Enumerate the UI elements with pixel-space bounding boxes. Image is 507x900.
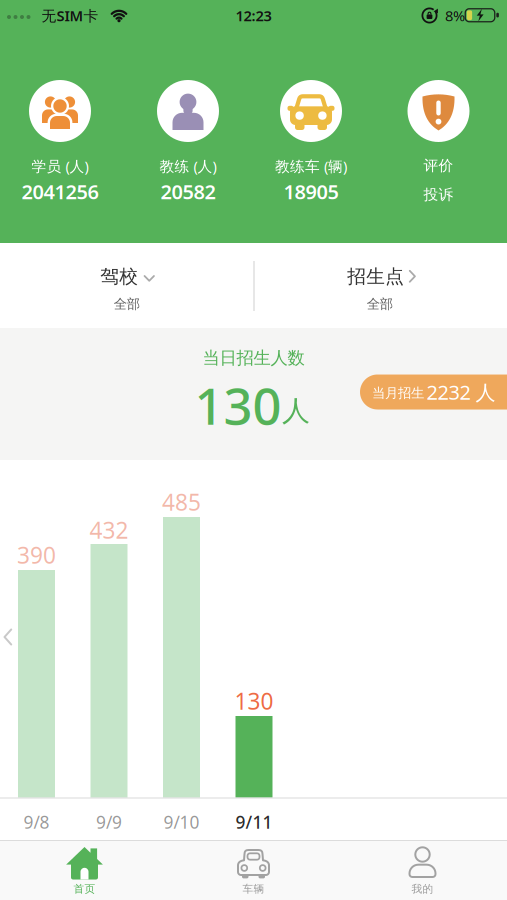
staticText: 投诉: [423, 185, 453, 203]
button[interactable]: 车辆: [169, 840, 338, 900]
staticText: 人: [282, 394, 310, 428]
staticText: 当日招生人数: [202, 347, 304, 369]
staticText: 教练车 (辆): [275, 156, 347, 176]
staticText: 2041256: [21, 178, 98, 205]
staticText: 130: [194, 371, 281, 439]
staticText: 无SIM卡: [41, 6, 98, 25]
staticText: 全部: [114, 296, 140, 312]
button[interactable]: 我的: [338, 840, 507, 900]
button[interactable]: 驾校: [0, 243, 253, 328]
button[interactable]: 上一页: [0, 625, 16, 649]
staticText: 全部: [367, 296, 393, 312]
button[interactable]: 首页: [0, 840, 169, 900]
staticText: 我的: [411, 882, 433, 895]
staticText: 20582: [160, 178, 215, 205]
staticText: 130: [234, 686, 273, 716]
staticText: 招生点: [347, 265, 404, 288]
button[interactable]: 学员 (人): [0, 31, 126, 243]
staticText: 9/10: [163, 810, 199, 833]
button[interactable]: 教练车 (辆): [253, 31, 380, 243]
button[interactable]: 教练 (人): [126, 31, 253, 243]
button[interactable]: 招生点: [254, 243, 507, 328]
button[interactable]: 当月招生: [360, 374, 507, 409]
staticText: 车辆: [242, 882, 264, 895]
staticText: 评价: [423, 156, 453, 174]
staticText: 9/8: [23, 810, 49, 833]
staticText: 2232 人: [426, 379, 495, 405]
staticText: 12:23: [235, 6, 271, 25]
staticText: 驾校: [100, 265, 138, 288]
button[interactable]: 评价: [380, 31, 507, 243]
staticText: 首页: [73, 882, 95, 895]
staticText: 当月招生: [372, 385, 424, 401]
staticText: 学员 (人): [31, 156, 88, 176]
staticText: 教练 (人): [159, 156, 216, 176]
staticText: 9/11: [235, 810, 272, 833]
staticText: 9/9: [96, 810, 122, 833]
staticText: 390: [17, 540, 56, 570]
staticText: 432: [89, 515, 128, 545]
staticText: 8%: [445, 6, 465, 25]
staticText: 485: [162, 487, 201, 517]
staticText: 18905: [283, 178, 338, 205]
